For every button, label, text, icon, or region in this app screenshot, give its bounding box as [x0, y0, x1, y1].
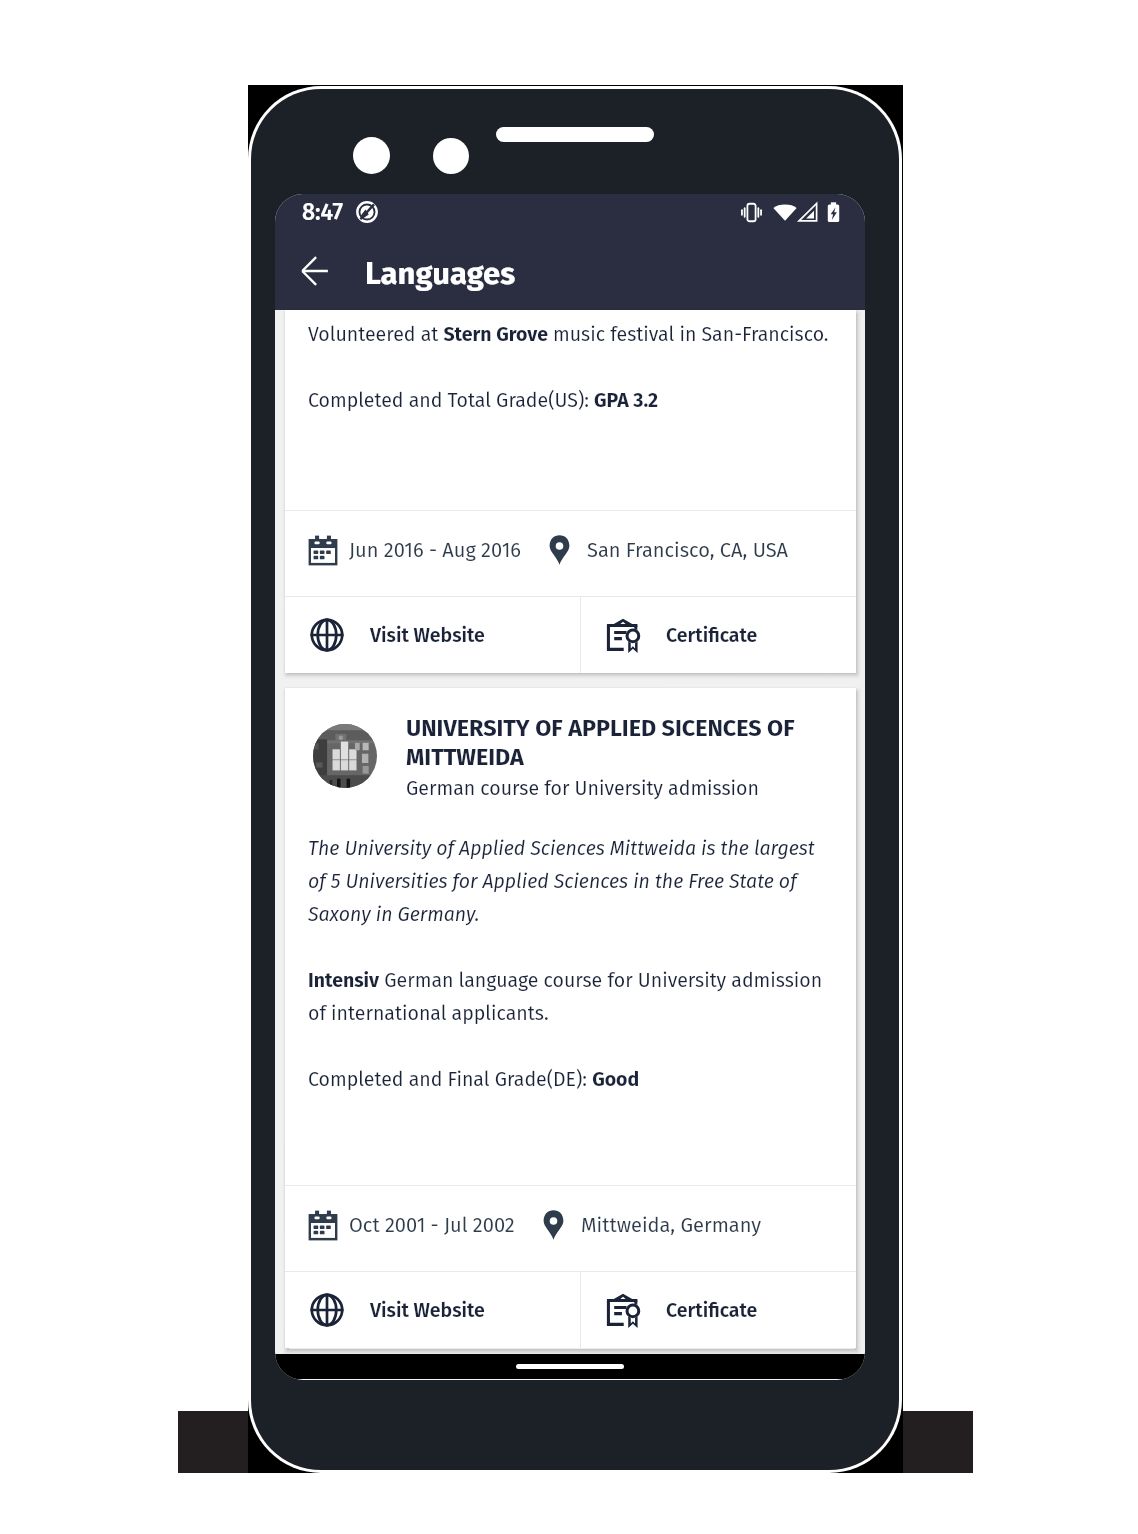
staticText: San Francisco, CA, USA	[587, 538, 789, 562]
staticText: Languages	[365, 255, 516, 292]
staticText: Certificate	[666, 1299, 758, 1322]
staticText: Mittweida, Germany	[581, 1213, 762, 1237]
staticText: Volunteered at Stern Grove music festiva…	[308, 315, 829, 414]
staticText: 8:47	[302, 198, 344, 226]
button[interactable]: Certificate	[581, 597, 856, 673]
staticText: Oct 2001 - Jul 2002	[349, 1213, 515, 1237]
staticText: UNIVERSITY OF APPLIED SICENCES OF MITTWE…	[406, 713, 842, 771]
staticText: Certificate	[666, 624, 758, 647]
button[interactable]: Certificate	[581, 1272, 856, 1348]
button[interactable]: Back	[293, 251, 337, 295]
staticText: Jun 2016 - Aug 2016	[349, 538, 521, 562]
staticText: Visit Website	[370, 624, 485, 647]
staticText: German course for University admission	[406, 771, 759, 802]
staticText: Intensiv German language course for Univ…	[308, 928, 830, 1093]
button[interactable]: Visit Website	[285, 1272, 580, 1348]
staticText: The University of Applied Sciences Mittw…	[308, 829, 830, 928]
button[interactable]: Visit Website	[285, 597, 580, 673]
staticText: Visit Website	[370, 1299, 485, 1322]
